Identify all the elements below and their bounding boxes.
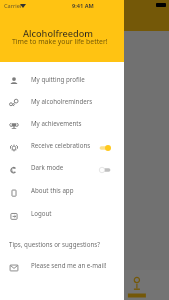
staticText: Dark mode xyxy=(31,163,64,171)
staticText: My quitting profile xyxy=(31,75,85,83)
staticText: 9:41 AM xyxy=(72,2,94,10)
button[interactable]: Please send me an e-mail! xyxy=(0,253,124,276)
button[interactable]: Logout xyxy=(0,201,124,224)
button[interactable]: My quitting profile xyxy=(0,67,124,90)
staticText: About this app xyxy=(31,186,74,194)
staticText: Please send me an e-mail! xyxy=(31,261,107,269)
staticText: Receive celebrations xyxy=(31,141,91,149)
staticText: Alcoholfreedom xyxy=(23,27,94,40)
button[interactable]: About this app xyxy=(0,178,124,201)
staticText: My achievements xyxy=(31,119,82,127)
staticText: Logout xyxy=(31,209,52,217)
button[interactable]: My achievements xyxy=(0,111,124,134)
button[interactable]: Receive celebrations xyxy=(0,133,124,156)
button[interactable]: Dark mode xyxy=(0,155,124,178)
staticText: Carrier xyxy=(4,2,23,10)
staticText: Time to make your life better! xyxy=(12,37,108,46)
staticText: My alcoholreminders xyxy=(31,97,93,105)
button[interactable]: Switch off xyxy=(99,167,111,173)
button[interactable]: Switch on xyxy=(99,145,111,151)
staticText: Tips, questions or suggestions? xyxy=(9,240,100,248)
button[interactable]: My alcoholreminders xyxy=(0,89,124,112)
